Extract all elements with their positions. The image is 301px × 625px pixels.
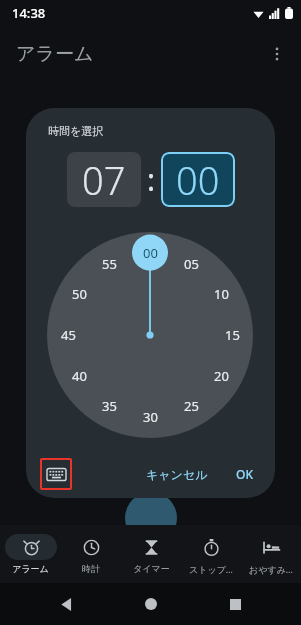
button[interactable]: 20 <box>205 367 237 385</box>
button[interactable]: 07 <box>67 152 141 207</box>
button[interactable]: 50 <box>63 285 95 303</box>
button[interactable]: Switch to text input <box>40 458 72 490</box>
staticText: 45 <box>61 326 76 344</box>
staticText: 05 <box>184 255 199 273</box>
button[interactable]: 40 <box>63 367 95 385</box>
staticText: : <box>147 159 156 200</box>
button[interactable]: 10 <box>205 285 237 303</box>
staticText: 00 <box>176 154 220 206</box>
staticText: 40 <box>72 367 87 385</box>
staticText: 15 <box>225 326 240 344</box>
button[interactable]: 00 <box>161 152 235 207</box>
staticText: 07 <box>82 154 126 206</box>
staticText: おやすみ… <box>249 563 293 575</box>
staticText: キャンセル <box>146 467 208 482</box>
staticText: 00 <box>143 244 158 262</box>
button[interactable]: Add alarm <box>125 492 177 544</box>
button[interactable]: タイマー <box>121 534 181 574</box>
staticText: タイマー <box>133 563 170 574</box>
button[interactable]: 45 <box>52 326 84 344</box>
button[interactable]: 55 <box>93 255 125 273</box>
staticText: 14:38 <box>12 4 46 22</box>
staticText: ストップ… <box>189 563 233 575</box>
button[interactable]: ストップ… <box>181 534 241 575</box>
button[interactable]: Recent apps <box>217 586 253 622</box>
staticText: 35 <box>102 397 117 415</box>
staticText: 10 <box>214 285 229 303</box>
button[interactable]: 35 <box>93 397 125 415</box>
button[interactable]: キャンセル <box>136 461 218 488</box>
button[interactable]: 05 <box>175 255 207 273</box>
button[interactable]: おやすみ… <box>241 534 301 575</box>
staticText: アラーム <box>12 563 49 574</box>
button[interactable]: Back <box>48 586 84 622</box>
button[interactable]: 15 <box>216 326 248 344</box>
button[interactable]: 00 <box>134 244 166 262</box>
staticText: 時計 <box>82 563 100 574</box>
staticText: 50 <box>72 285 87 303</box>
staticText: 55 <box>102 255 117 273</box>
button[interactable]: 25 <box>175 397 207 415</box>
button[interactable]: Home <box>133 586 169 622</box>
button[interactable]: 30 <box>134 408 166 426</box>
staticText: アラーム <box>16 42 94 66</box>
staticText: 20 <box>214 367 229 385</box>
button[interactable]: アラーム <box>0 534 61 574</box>
staticText: 25 <box>184 397 199 415</box>
button[interactable]: 時計 <box>61 534 121 574</box>
staticText: OK <box>236 466 253 482</box>
staticText: 時間を選択 <box>48 124 104 138</box>
staticText: 30 <box>143 408 158 426</box>
button[interactable]: OK <box>226 460 263 488</box>
button[interactable]: More options <box>257 34 297 74</box>
